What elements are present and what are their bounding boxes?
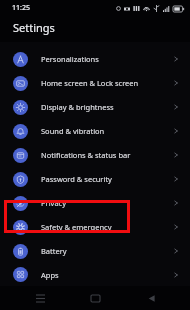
button[interactable]: Privacy: [0, 191, 190, 215]
staticText: Notifications & status bar: [41, 150, 173, 160]
button[interactable]: Apps: [0, 263, 190, 286]
staticText: Settings: [13, 20, 55, 35]
button[interactable]: Safety & emergency: [0, 215, 190, 239]
button[interactable]: Back: [135, 288, 167, 308]
staticText: Home screen & Lock screen: [41, 78, 173, 88]
staticText: Display & brightness: [41, 102, 173, 112]
button[interactable]: Personalizations: [0, 47, 190, 71]
staticText: 11:25: [12, 3, 30, 13]
staticText: Apps: [41, 270, 173, 280]
staticText: Personalizations: [41, 54, 173, 64]
button[interactable]: Home screen & Lock screen: [0, 71, 190, 95]
button[interactable]: Home: [79, 288, 111, 308]
button[interactable]: Notifications & status bar: [0, 143, 190, 167]
button[interactable]: Recent apps: [24, 288, 56, 308]
staticText: Password & security: [41, 174, 173, 184]
button[interactable]: Battery: [0, 239, 190, 263]
staticText: Battery: [41, 246, 173, 256]
staticText: Safety & emergency: [41, 222, 173, 232]
staticText: Sound & vibration: [41, 126, 173, 136]
button[interactable]: Display & brightness: [0, 95, 190, 119]
button[interactable]: Password & security: [0, 167, 190, 191]
button[interactable]: Sound & vibration: [0, 119, 190, 143]
staticText: Privacy: [41, 198, 173, 208]
